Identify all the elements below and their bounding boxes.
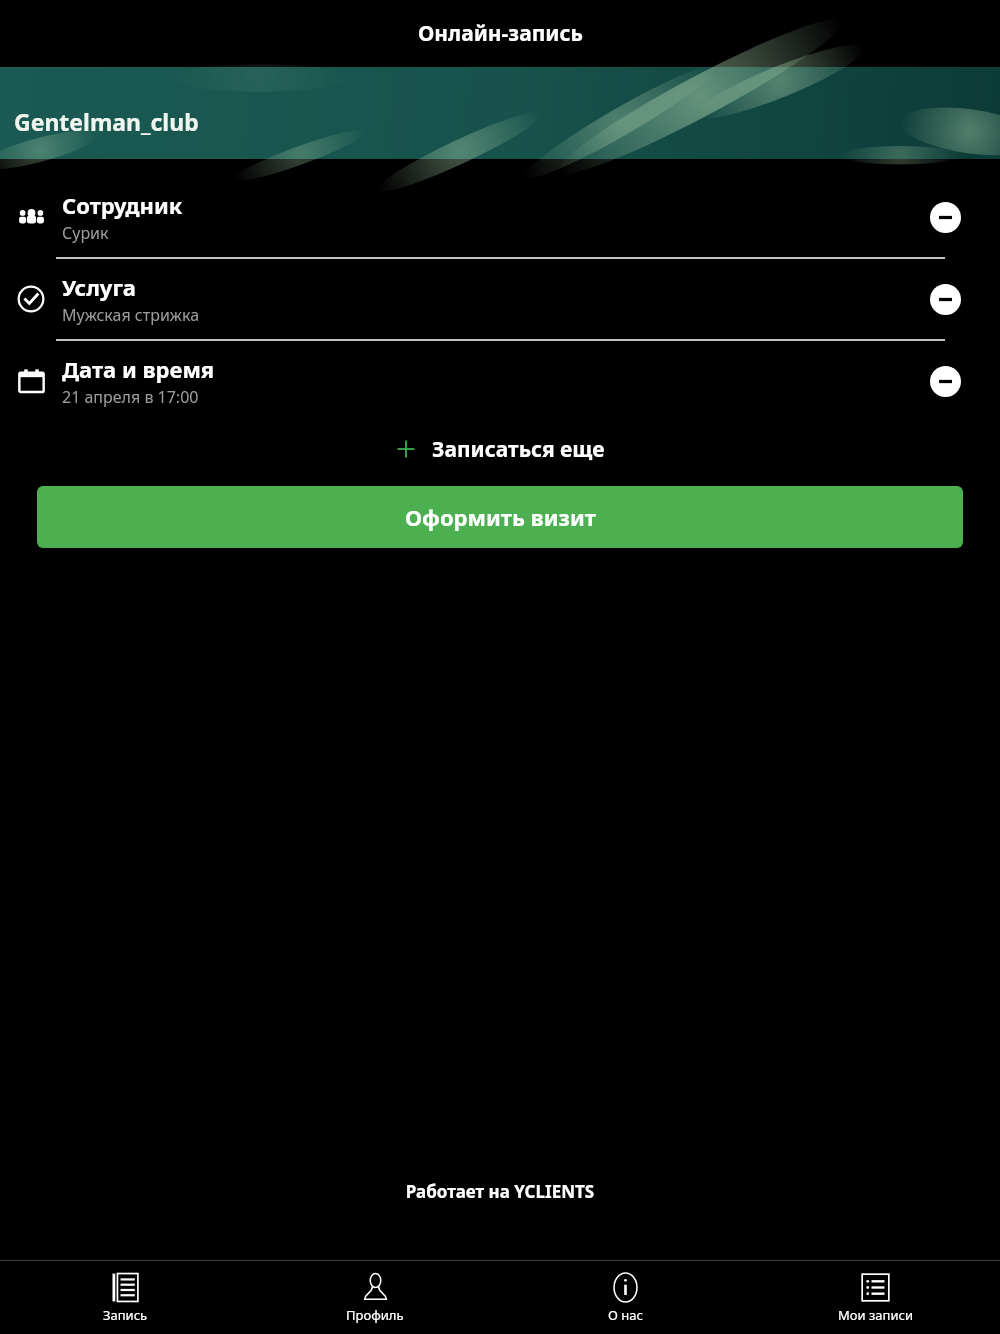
staticText: Сурик [62, 222, 109, 244]
staticText: Работает на YCLIENTS [0, 1180, 1000, 1203]
button[interactable]: Удалить: Дата и время [930, 366, 961, 397]
staticText: Дата и время [62, 354, 215, 384]
staticText: Сотрудник [62, 190, 183, 220]
button[interactable]: Запись [0, 1261, 250, 1334]
staticText: Оформить визит [405, 502, 596, 532]
button[interactable]: О нас [500, 1261, 750, 1334]
button[interactable]: Записаться еще [0, 421, 1000, 477]
button[interactable]: Мои записи [750, 1261, 1000, 1334]
button[interactable]: Оформить визит [37, 486, 963, 548]
staticText: Услуга [62, 272, 136, 302]
button[interactable]: Дата и время [0, 341, 1000, 421]
staticText: 21 апреля в 17:00 [62, 386, 199, 408]
staticText: Мужская стрижка [62, 304, 200, 326]
staticText: Gentelman_club [14, 106, 199, 137]
button[interactable]: Удалить: Сотрудник [930, 202, 961, 233]
staticText: Запись [103, 1306, 148, 1324]
staticText: Профиль [346, 1306, 404, 1324]
staticText: Записаться еще [432, 435, 605, 464]
button[interactable]: Профиль [250, 1261, 500, 1334]
button[interactable]: Услуга [0, 259, 1000, 339]
button[interactable]: Сотрудник [0, 177, 1000, 257]
staticText: Онлайн-запись [418, 19, 583, 48]
staticText: О нас [608, 1306, 643, 1324]
staticText: Мои записи [838, 1306, 913, 1324]
button[interactable]: Удалить: Услуга [930, 284, 961, 315]
